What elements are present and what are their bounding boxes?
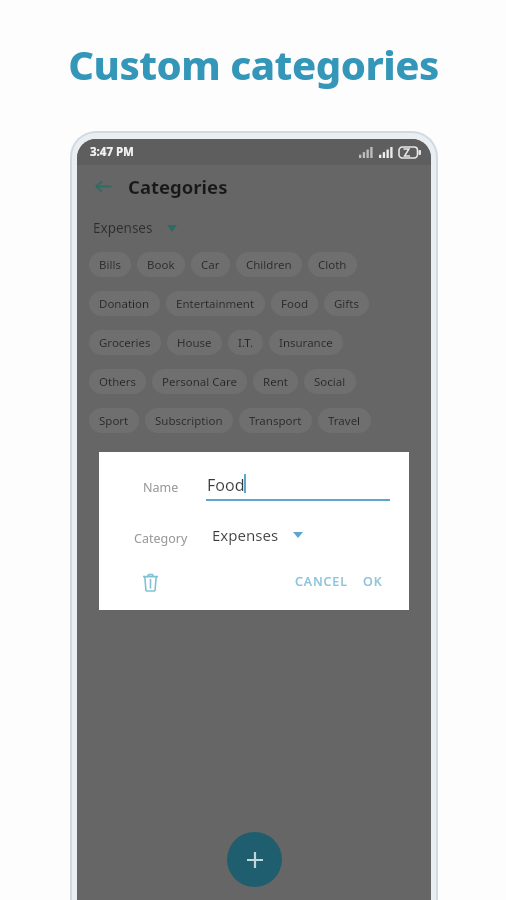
staticText: Insurance [279,335,333,351]
button[interactable]: CANCEL [289,568,354,595]
button[interactable]: Back [85,168,121,204]
staticText: Travel [328,413,361,429]
button[interactable]: OK [357,568,389,595]
staticText: Cloth [318,257,347,273]
staticText: I.T. [238,335,253,351]
staticText: 3:47 PM [90,144,134,160]
staticText: Others [99,374,136,390]
staticText: Sport [99,413,129,429]
staticText: Donation [99,296,150,312]
staticText: CANCEL [295,573,348,590]
staticText: Groceries [99,335,151,351]
staticText: Book [147,257,175,273]
staticText: Food [207,474,245,496]
button[interactable]: Car [191,252,230,277]
button[interactable]: Insurance [269,330,343,355]
staticText: Car [201,257,220,273]
staticText: Rent [263,374,288,390]
button[interactable]: Children [236,252,302,277]
staticText: House [177,335,212,351]
button[interactable]: Groceries [89,330,161,355]
staticText: Custom categories [68,37,439,91]
staticText: Personal Care [162,374,237,390]
staticText: Expenses [212,525,279,545]
button[interactable]: Expenses [212,525,303,545]
button[interactable]: Delete [135,567,165,597]
staticText: Category [134,530,188,547]
button[interactable]: Bills [89,252,131,277]
button[interactable]: Sport [89,408,139,433]
button[interactable]: Add category [227,832,282,887]
button[interactable]: Book [137,252,185,277]
staticText: Expenses [93,219,153,237]
staticText: Social [314,374,346,390]
staticText: Gifts [334,296,359,312]
button[interactable]: Expenses [93,219,177,237]
button[interactable]: House [167,330,222,355]
button[interactable]: Entertainment [166,291,265,316]
button[interactable]: Donation [89,291,160,316]
staticText: OK [363,573,383,590]
button[interactable]: Personal Care [152,369,247,394]
staticText: Subscription [155,413,223,429]
button[interactable]: Transport [239,408,312,433]
button[interactable]: Social [304,369,356,394]
staticText: Categories [128,174,228,199]
staticText: Food [281,296,308,312]
staticText: Children [246,257,292,273]
staticText: Entertainment [176,296,255,312]
button[interactable]: Subscription [145,408,233,433]
button[interactable]: Rent [253,369,298,394]
button[interactable]: I.T. [228,330,263,355]
button[interactable]: Cloth [308,252,357,277]
staticText: Name [143,479,179,496]
button[interactable]: Others [89,369,146,394]
staticText: Bills [99,257,121,273]
button[interactable]: Gifts [324,291,369,316]
button[interactable]: Travel [318,408,371,433]
button[interactable]: Food [271,291,318,316]
staticText: Transport [249,413,302,429]
